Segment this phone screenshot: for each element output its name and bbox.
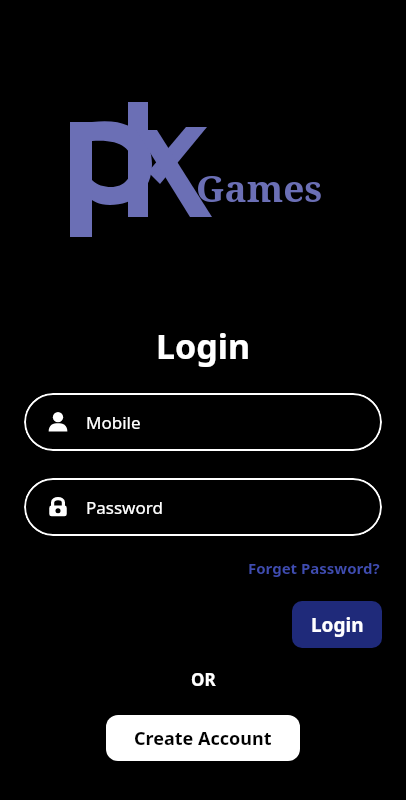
staticText: OR — [191, 668, 216, 691]
staticText: Login — [311, 612, 364, 638]
button[interactable]: Forget Password? — [246, 556, 382, 580]
staticText: Login — [156, 323, 251, 369]
staticText: Forget Password? — [248, 558, 380, 578]
staticText: Password — [86, 496, 163, 519]
button[interactable]: Login — [292, 601, 382, 648]
staticText: Create Account — [134, 726, 272, 751]
button[interactable]: Create Account — [106, 715, 300, 761]
button[interactable]: Password — [24, 478, 382, 536]
button[interactable]: Mobile — [24, 393, 382, 451]
staticText: Mobile — [86, 411, 141, 434]
staticText: Games — [196, 162, 323, 212]
